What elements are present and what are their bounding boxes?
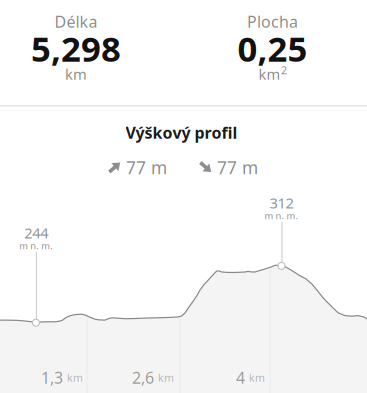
button[interactable]: Plocha [196, 11, 348, 84]
staticText: m n. m. [265, 209, 299, 222]
button[interactable]: Délka [0, 11, 152, 84]
staticText: 0,25 [237, 25, 307, 71]
staticText: km [249, 370, 265, 385]
staticText: km [65, 64, 87, 84]
staticText: km [158, 370, 174, 385]
staticText: 312 [270, 193, 294, 212]
staticText: 5,298 [31, 25, 121, 71]
staticText: 244 [24, 223, 48, 242]
staticText: m n. m. [19, 239, 53, 252]
staticText: Výškový profil [125, 122, 237, 143]
staticText: km [258, 64, 280, 84]
staticText: Plocha [247, 11, 298, 32]
staticText: 2,6 [132, 367, 154, 388]
staticText: km [67, 370, 83, 385]
staticText: Délka [54, 11, 97, 32]
staticText: 2 [281, 63, 287, 77]
staticText: 77 m [126, 156, 167, 179]
staticText: 1,3 [41, 367, 63, 388]
staticText: 4 [236, 367, 245, 388]
staticText: 77 m [217, 156, 258, 179]
